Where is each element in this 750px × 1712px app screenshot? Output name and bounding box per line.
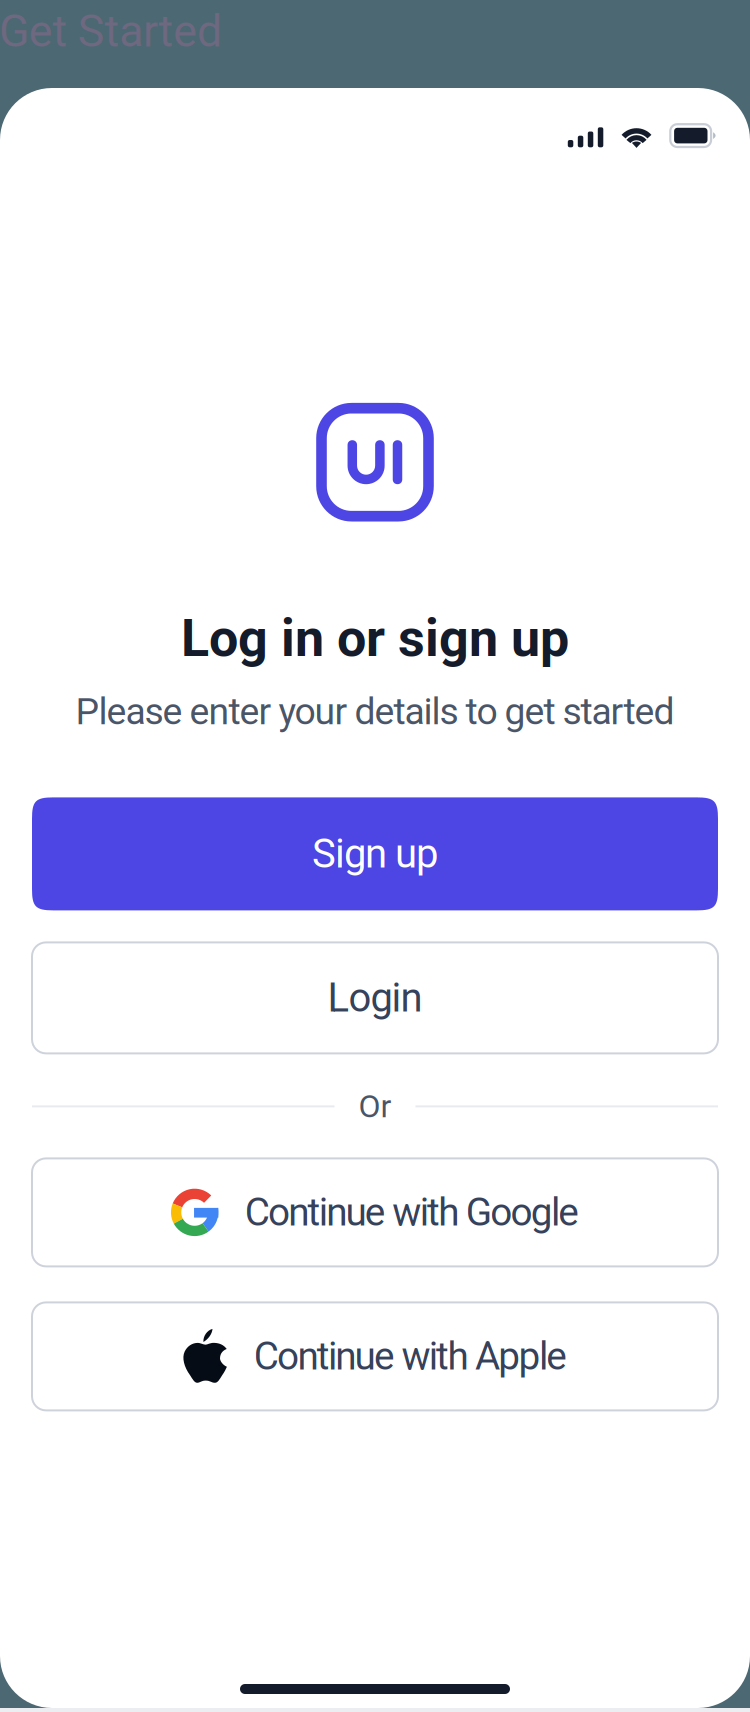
button[interactable]: Continue with Apple xyxy=(32,1302,718,1410)
staticText: Or xyxy=(358,1088,391,1125)
staticText: Log in or sign up xyxy=(181,608,569,669)
staticText: Get Started xyxy=(0,5,222,57)
staticText: Continue with Apple xyxy=(254,1334,567,1379)
staticText: Sign up xyxy=(312,830,438,877)
button[interactable]: Sign up xyxy=(32,797,718,910)
button[interactable]: Continue with Google xyxy=(32,1158,718,1266)
staticText: Please enter your details to get started xyxy=(75,690,674,733)
button[interactable]: Login xyxy=(32,942,718,1053)
staticText: Continue with Google xyxy=(245,1190,579,1235)
staticText: Login xyxy=(327,974,422,1021)
